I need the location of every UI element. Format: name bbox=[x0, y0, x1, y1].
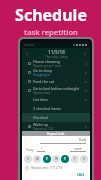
button[interactable]: Wake up bbox=[22, 122, 90, 131]
staticText: Repeats every 1 week bbox=[33, 64, 62, 68]
staticText: Every bbox=[26, 148, 34, 152]
button[interactable]: Go to bed before midnight bbox=[22, 86, 90, 95]
staticText: List item bbox=[33, 97, 48, 102]
staticText: Repeats daily bbox=[33, 91, 51, 95]
staticText: Go to shop bbox=[33, 68, 52, 73]
staticText: Repeat until: 11/12/18 bbox=[31, 166, 63, 170]
staticText: Go to bed before midnight bbox=[33, 86, 80, 91]
staticText: S bbox=[83, 157, 85, 161]
staticText: T bbox=[46, 157, 48, 161]
button[interactable]: T bbox=[61, 155, 69, 163]
button[interactable]: House cleaning bbox=[22, 59, 90, 68]
staticText: W bbox=[55, 157, 58, 161]
staticText: Schedule bbox=[15, 4, 87, 26]
staticText: Repeats at 7:00 bbox=[33, 127, 54, 131]
button[interactable]: 2 checked items bbox=[22, 104, 90, 113]
staticText: Daily bbox=[79, 138, 86, 142]
button[interactable]: Go to shop bbox=[22, 68, 90, 77]
staticText: F bbox=[74, 157, 76, 161]
staticText: task repetition bbox=[24, 27, 78, 37]
staticText: 1 bbox=[37, 147, 45, 151]
button[interactable]: Repeat until: 11/12/18 bbox=[25, 166, 87, 170]
button[interactable]: F bbox=[71, 155, 79, 163]
staticText: Feed the cat bbox=[33, 79, 55, 84]
button[interactable]: Next day bbox=[81, 50, 89, 58]
staticText: Thursday, today bbox=[45, 55, 68, 59]
button[interactable]: Previous day bbox=[23, 50, 31, 58]
staticText: Shopping list bbox=[33, 73, 51, 77]
staticText: 11/5/18 bbox=[48, 49, 65, 55]
button[interactable]: S bbox=[24, 155, 32, 163]
staticText: SAVE bbox=[77, 173, 85, 177]
staticText: 2 checked items bbox=[33, 106, 61, 111]
staticText: Repeat task bbox=[47, 132, 65, 136]
staticText: week bbox=[70, 147, 86, 151]
staticText: House cleaning bbox=[33, 59, 60, 64]
staticText: T bbox=[64, 157, 66, 161]
button[interactable]: Feed the cat bbox=[22, 77, 90, 86]
staticText: Wake up bbox=[33, 122, 48, 127]
button[interactable]: S bbox=[80, 155, 88, 163]
button[interactable]: Checked bbox=[22, 113, 90, 122]
staticText: S bbox=[27, 157, 29, 161]
button[interactable]: List item bbox=[22, 95, 90, 104]
button[interactable]: T bbox=[43, 155, 51, 163]
staticText: Checked bbox=[33, 115, 48, 120]
button[interactable]: M bbox=[33, 155, 41, 163]
button[interactable]: W bbox=[52, 155, 60, 163]
staticText: M bbox=[36, 157, 39, 161]
button[interactable]: SAVE bbox=[75, 172, 87, 178]
